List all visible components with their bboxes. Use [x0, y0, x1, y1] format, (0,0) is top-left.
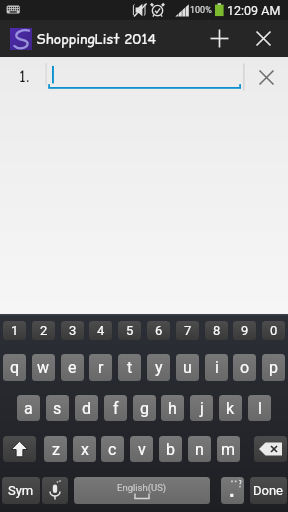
button[interactable]: Delete item: [245, 57, 288, 97]
staticText: 3: [69, 323, 77, 338]
button[interactable]: x: [73, 436, 96, 462]
staticText: z: [52, 440, 60, 459]
button[interactable]: z: [44, 436, 67, 462]
staticText: 7: [184, 323, 192, 338]
staticText: a: [24, 399, 33, 418]
button[interactable]: English(US): [74, 477, 210, 504]
button[interactable]: e: [61, 354, 84, 381]
staticText: 9: [241, 323, 249, 338]
button[interactable]: v: [130, 436, 153, 462]
button[interactable]: j: [190, 395, 213, 421]
button[interactable]: 1: [3, 321, 26, 340]
button[interactable]: 6: [147, 321, 170, 340]
button[interactable]: a: [17, 395, 40, 421]
staticText: j: [200, 399, 204, 418]
staticText: 1: [11, 323, 19, 338]
button[interactable]: w: [32, 354, 55, 381]
button[interactable]: c: [101, 436, 124, 462]
staticText: w: [37, 358, 50, 377]
staticText: t: [127, 358, 133, 377]
button[interactable]: h: [161, 395, 184, 421]
staticText: x: [81, 440, 89, 459]
staticText: 2: [40, 323, 48, 338]
staticText: q: [10, 358, 20, 377]
staticText: g: [140, 399, 149, 418]
staticText: 1.: [19, 66, 30, 87]
button[interactable]: u: [176, 354, 199, 381]
staticText: 12:09 AM: [227, 3, 281, 18]
staticText: u: [183, 358, 192, 377]
staticText: d: [82, 399, 92, 418]
button[interactable]: Shift: [3, 436, 36, 462]
button[interactable]: k: [219, 395, 242, 421]
button[interactable]: n: [188, 436, 211, 462]
staticText: 6: [155, 323, 163, 338]
button[interactable]: 5: [118, 321, 141, 340]
staticText: p: [269, 358, 278, 377]
button[interactable]: g: [133, 395, 156, 421]
button[interactable]: Close: [240, 20, 286, 57]
staticText: f: [113, 399, 119, 418]
button[interactable]: Sym: [2, 477, 40, 504]
button[interactable]: 3: [61, 321, 84, 340]
staticText: m: [221, 440, 236, 459]
staticText: e: [68, 358, 77, 377]
button[interactable]: Add item: [198, 20, 240, 57]
button[interactable]: Voice input: [42, 477, 68, 504]
staticText: b: [166, 440, 175, 459]
button[interactable]: l: [248, 395, 271, 421]
staticText: c: [108, 440, 117, 459]
button[interactable]: r: [89, 354, 112, 381]
button[interactable]: b: [159, 436, 182, 462]
staticText: 4: [97, 323, 105, 338]
staticText: v: [138, 440, 146, 459]
button[interactable]: i: [205, 354, 228, 381]
button[interactable]: m: [217, 436, 240, 462]
staticText: y: [155, 358, 163, 377]
button[interactable]: Done: [250, 477, 287, 504]
button[interactable]: s: [46, 395, 69, 421]
button[interactable]: t: [118, 354, 141, 381]
staticText: Done: [253, 483, 284, 498]
staticText: 8: [213, 323, 221, 338]
staticText: h: [168, 399, 177, 418]
button[interactable]: Backspace: [254, 436, 287, 462]
staticText: 0: [270, 323, 278, 338]
button[interactable]: 0: [262, 321, 285, 340]
button[interactable]: 2: [32, 321, 55, 340]
button[interactable]: f: [104, 395, 127, 421]
button[interactable]: 9: [233, 321, 256, 340]
button[interactable]: Period: [221, 477, 244, 504]
button[interactable]: d: [75, 395, 98, 421]
button[interactable]: 8: [205, 321, 228, 340]
button[interactable]: q: [3, 354, 26, 381]
button[interactable]: o: [233, 354, 256, 381]
staticText: i: [215, 358, 219, 377]
staticText: Sym: [8, 483, 34, 498]
staticText: l: [258, 399, 262, 418]
staticText: 100%: [190, 5, 212, 16]
staticText: 5: [126, 323, 134, 338]
staticText: English(US): [117, 482, 167, 493]
staticText: n: [195, 440, 204, 459]
button[interactable]: 4: [89, 321, 112, 340]
button[interactable]: p: [262, 354, 285, 381]
staticText: o: [240, 358, 250, 377]
staticText: r: [98, 358, 104, 377]
staticText: k: [226, 399, 235, 418]
button[interactable]: 7: [176, 321, 199, 340]
staticText: ShoppingList 2014: [36, 29, 156, 49]
staticText: s: [53, 399, 62, 418]
button[interactable]: y: [147, 354, 170, 381]
